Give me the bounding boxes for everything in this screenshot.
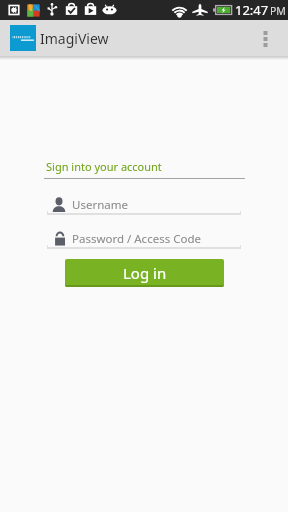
staticText: Username xyxy=(72,197,128,213)
button[interactable]: Password / Access Code xyxy=(47,231,241,252)
staticText: PM xyxy=(270,4,286,18)
staticText: ImagiView xyxy=(40,29,109,48)
button[interactable]: More options xyxy=(252,20,288,56)
staticText: Password / Access Code xyxy=(72,231,201,247)
button[interactable]: Username xyxy=(47,197,241,218)
staticText: Log in xyxy=(123,263,167,283)
staticText: 12:47 xyxy=(235,1,269,19)
button[interactable]: Log in xyxy=(65,259,224,287)
staticText: Sign into your account xyxy=(46,159,162,174)
